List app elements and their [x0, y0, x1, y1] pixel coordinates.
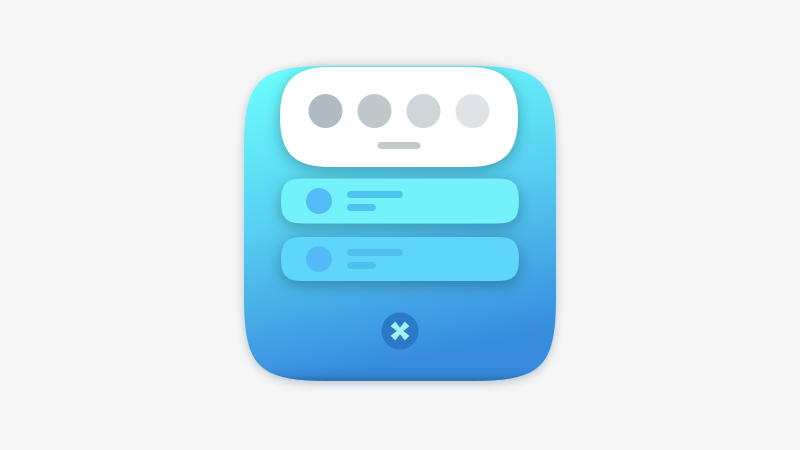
button[interactable]: Conversation [281, 178, 519, 223]
button[interactable]: Close [381, 312, 418, 350]
button[interactable]: Conversation [281, 237, 519, 281]
